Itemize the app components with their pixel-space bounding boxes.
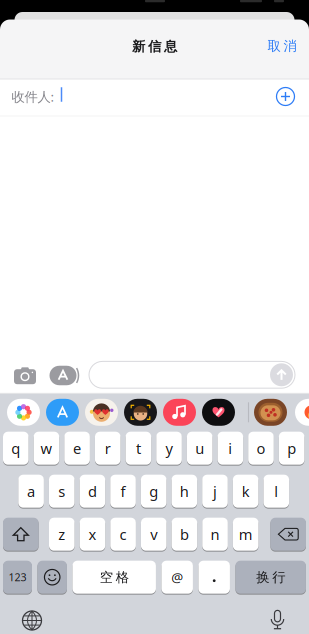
button[interactable]: 信息输入框 <box>89 361 295 388</box>
staticText: e <box>73 438 81 458</box>
button[interactable]: 下一个键盘 <box>21 609 43 631</box>
staticText: w <box>40 438 52 458</box>
staticText: s <box>58 481 65 501</box>
staticText: z <box>58 524 65 544</box>
button[interactable]: m <box>233 517 258 551</box>
button[interactable]: n <box>202 517 228 551</box>
button[interactable]: g <box>141 474 166 508</box>
staticText: n <box>211 524 220 544</box>
button[interactable]: 发送 <box>270 363 293 386</box>
button[interactable]: 123 <box>3 560 32 594</box>
button[interactable]: 照片 <box>7 399 40 426</box>
button[interactable]: j <box>202 474 228 508</box>
button[interactable]: k <box>233 474 258 508</box>
staticText: v <box>150 524 157 544</box>
staticText: 换 行 <box>256 569 285 585</box>
staticText: d <box>88 481 97 501</box>
button[interactable]: @ <box>161 560 193 594</box>
staticText: j <box>213 481 217 501</box>
button[interactable]: t <box>126 431 151 465</box>
button[interactable]: x <box>80 517 105 551</box>
button[interactable]: d <box>80 474 105 508</box>
button[interactable]: 表情符号 <box>37 560 67 594</box>
button[interactable]: 拟我表情 <box>85 399 118 426</box>
staticText: h <box>180 481 189 501</box>
staticText: 收件人: <box>11 88 54 105</box>
button[interactable]: i <box>217 431 243 465</box>
staticText: o <box>256 438 265 458</box>
button[interactable]: h <box>171 474 197 508</box>
button[interactable]: r <box>95 431 120 465</box>
button[interactable]: iMessage 应用 <box>49 364 83 386</box>
staticText: p <box>287 438 296 458</box>
button[interactable]: 删除 <box>270 517 306 551</box>
button[interactable]: 音乐 <box>163 399 196 426</box>
staticText: m <box>239 524 253 544</box>
staticText: @ <box>171 568 183 586</box>
staticText: x <box>88 524 96 544</box>
staticText: r <box>105 438 111 458</box>
button[interactable]: f <box>110 474 136 508</box>
button[interactable]: e <box>64 431 90 465</box>
button[interactable]: c <box>110 517 136 551</box>
button[interactable]: 照片效果 <box>124 399 157 426</box>
button[interactable]: 听写 <box>267 608 287 632</box>
staticText: 空 格 <box>100 569 129 585</box>
staticText: g <box>149 481 158 501</box>
button[interactable]: 取 消 <box>260 32 304 60</box>
button[interactable]: b <box>172 517 197 551</box>
button[interactable]: l <box>263 474 289 508</box>
button[interactable]: y <box>156 431 182 465</box>
button[interactable]: App Store <box>46 399 79 426</box>
button[interactable]: 添加联系人 <box>272 83 298 109</box>
button[interactable]: 相机 <box>13 365 37 385</box>
button[interactable]: a <box>18 474 44 508</box>
button[interactable]: 换 行 <box>235 560 306 594</box>
staticText: 123 <box>8 570 26 584</box>
button[interactable]: 美食 <box>254 399 287 426</box>
staticText: u <box>195 438 204 458</box>
button[interactable]: p <box>279 431 304 465</box>
staticText: k <box>242 481 250 501</box>
button[interactable]: o <box>248 431 274 465</box>
staticText: i <box>228 438 232 458</box>
staticText: a <box>27 481 35 501</box>
staticText: t <box>136 438 141 458</box>
staticText: f <box>120 481 125 501</box>
button[interactable]: u <box>187 431 212 465</box>
button[interactable]: s <box>49 474 75 508</box>
button[interactable]: 应用 <box>295 399 309 426</box>
button[interactable]: 空 格 <box>72 560 156 594</box>
staticText: y <box>166 438 173 458</box>
staticText: b <box>180 524 189 544</box>
staticText: 取 消 <box>267 38 296 54</box>
button[interactable]: 数码点触 <box>202 399 235 426</box>
button[interactable]: Shift <box>3 517 39 551</box>
staticText: q <box>11 438 20 458</box>
button[interactable]: q <box>3 431 29 465</box>
staticText: 新 信 息 <box>132 38 177 55</box>
staticText: c <box>120 524 127 544</box>
button[interactable]: 句点 <box>198 560 230 594</box>
button[interactable]: w <box>34 431 59 465</box>
button[interactable]: v <box>141 517 166 551</box>
staticText: l <box>274 481 278 501</box>
button[interactable]: z <box>49 517 75 551</box>
